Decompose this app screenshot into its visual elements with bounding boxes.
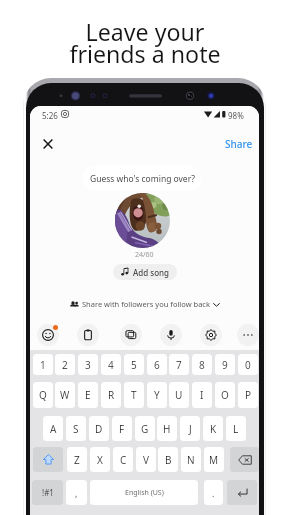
staticText: A xyxy=(50,422,57,436)
staticText: , xyxy=(75,487,78,499)
staticText: friends a note xyxy=(0,38,290,70)
button[interactable]: 8 xyxy=(192,354,212,375)
button[interactable]: I xyxy=(192,382,212,408)
staticText: . xyxy=(212,487,215,499)
button[interactable]: W xyxy=(55,382,75,408)
button[interactable]: !#1 xyxy=(32,480,63,505)
button[interactable]: Settings xyxy=(200,324,222,346)
button[interactable]: Close xyxy=(38,134,58,154)
staticText: !#1 xyxy=(42,487,54,498)
button[interactable]: Share with followers you follow back xyxy=(30,297,259,311)
staticText: O xyxy=(221,388,229,402)
staticText: Guess who's coming over? xyxy=(90,173,195,185)
button[interactable]: Enter xyxy=(227,480,257,505)
button[interactable]: Share xyxy=(220,134,258,154)
button[interactable]: A xyxy=(43,416,63,441)
button[interactable]: L xyxy=(226,416,246,441)
staticText: P xyxy=(245,388,252,402)
button[interactable]: F xyxy=(112,416,132,441)
button[interactable]: Photo xyxy=(115,193,170,248)
staticText: F xyxy=(119,422,125,436)
button[interactable]: 9 xyxy=(215,354,235,375)
staticText: Share with followers you follow back xyxy=(82,299,210,309)
staticText: L xyxy=(233,422,239,436)
staticText: 0 xyxy=(245,358,251,372)
button[interactable]: Z xyxy=(67,447,87,472)
button[interactable]: R xyxy=(101,382,121,408)
staticText: 5 xyxy=(131,358,137,372)
staticText: H xyxy=(163,422,171,436)
button[interactable]: 2 xyxy=(55,354,75,375)
button[interactable]: K xyxy=(203,416,223,441)
button[interactable]: Guess who's coming over? xyxy=(82,166,202,191)
button[interactable]: 5 xyxy=(124,354,144,375)
button[interactable]: H xyxy=(157,416,177,441)
button[interactable]: T xyxy=(124,382,144,408)
staticText: Q xyxy=(39,388,47,402)
button[interactable]: G xyxy=(135,416,155,441)
button[interactable]: Clipboard xyxy=(77,324,99,346)
button[interactable]: V xyxy=(136,447,156,472)
staticText: Leave your xyxy=(0,16,290,48)
button[interactable]: Voice input xyxy=(160,324,182,346)
button[interactable]: , xyxy=(66,480,87,505)
button[interactable]: 4 xyxy=(101,354,121,375)
staticText: Add song xyxy=(133,267,169,278)
staticText: V xyxy=(143,453,149,467)
staticText: K xyxy=(210,422,217,436)
staticText: Z xyxy=(74,453,80,467)
staticText: D xyxy=(95,422,103,436)
staticText: N xyxy=(187,453,195,467)
button[interactable]: . xyxy=(204,480,223,505)
staticText: I xyxy=(200,388,204,402)
button[interactable]: Q xyxy=(33,382,53,408)
staticText: 98% xyxy=(228,110,244,121)
button[interactable]: U xyxy=(169,382,189,408)
button[interactable]: 0 xyxy=(238,354,258,375)
button[interactable]: D xyxy=(89,416,109,441)
button[interactable]: Y xyxy=(147,382,167,408)
staticText: 5:26 xyxy=(42,110,58,121)
button[interactable]: B xyxy=(158,447,178,472)
button[interactable]: S xyxy=(66,416,86,441)
button[interactable]: M xyxy=(204,447,224,472)
staticText: R xyxy=(108,388,115,402)
staticText: 6 xyxy=(154,358,160,372)
staticText: S xyxy=(73,422,79,436)
button[interactable]: Emoji xyxy=(37,324,59,346)
staticText: J xyxy=(189,422,192,436)
button[interactable]: Stickers xyxy=(120,324,142,346)
button[interactable]: J xyxy=(180,416,200,441)
staticText: M xyxy=(209,453,219,467)
staticText: G xyxy=(141,422,149,436)
staticText: W xyxy=(60,388,70,402)
staticText: 9 xyxy=(222,358,228,372)
staticText: 7 xyxy=(176,358,182,372)
staticText: Share xyxy=(225,137,253,151)
button[interactable]: C xyxy=(113,447,133,472)
staticText: E xyxy=(85,388,91,402)
button[interactable]: 3 xyxy=(78,354,98,375)
button[interactable]: English (US) xyxy=(90,480,198,505)
staticText: Y xyxy=(154,388,160,402)
button[interactable]: X xyxy=(90,447,110,472)
button[interactable]: E xyxy=(78,382,98,408)
button[interactable]: 1 xyxy=(33,354,53,375)
staticText: B xyxy=(165,453,172,467)
staticText: 3 xyxy=(85,358,91,372)
staticText: U xyxy=(175,388,183,402)
button[interactable]: O xyxy=(215,382,235,408)
button[interactable]: N xyxy=(181,447,201,472)
button[interactable]: Shift xyxy=(33,447,63,472)
staticText: 8 xyxy=(199,358,205,372)
button[interactable]: Backspace xyxy=(230,447,259,472)
button[interactable]: 7 xyxy=(169,354,189,375)
staticText: T xyxy=(131,388,137,402)
button[interactable]: P xyxy=(238,382,258,408)
staticText: C xyxy=(120,453,127,467)
button[interactable]: More options xyxy=(237,324,259,346)
staticText: 4 xyxy=(108,358,114,372)
staticText: 2 xyxy=(62,358,68,372)
button[interactable]: Add song xyxy=(113,264,177,280)
button[interactable]: 6 xyxy=(147,354,167,375)
